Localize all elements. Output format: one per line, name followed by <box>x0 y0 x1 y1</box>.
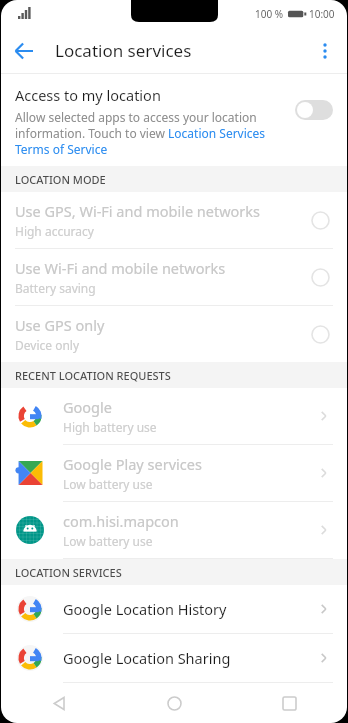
staticText: High battery use <box>63 419 157 435</box>
staticText: Google Location Sharing <box>63 648 315 668</box>
staticText: Device only <box>15 337 80 353</box>
button[interactable]: Back <box>1 684 117 723</box>
staticText: RECENT LOCATION REQUESTS <box>15 368 171 383</box>
staticText: 100 % <box>255 7 284 21</box>
button[interactable]: Home <box>117 684 232 723</box>
button[interactable]: More options <box>302 28 347 73</box>
button[interactable]: Use Wi-Fi and mobile networks <box>1 249 347 306</box>
staticText: Use Wi-Fi and mobile networks <box>15 258 226 278</box>
staticText: Location services <box>55 39 192 62</box>
staticText: Low battery use <box>63 533 153 549</box>
staticText: LOCATION MODE <box>15 172 106 187</box>
staticText: High accuracy <box>15 223 94 239</box>
button[interactable]: Access to my location <box>1 74 347 166</box>
button[interactable]: Recent apps <box>232 684 347 723</box>
button[interactable]: Google Location Sharing <box>1 634 347 683</box>
button[interactable]: Google Play services <box>1 445 347 502</box>
button[interactable]: Google <box>1 388 347 445</box>
staticText: 10:00 <box>309 7 335 21</box>
staticText: Allow selected apps to access your locat… <box>15 109 287 157</box>
button[interactable]: com.hisi.mapcon <box>1 502 347 559</box>
staticText: Google Play services <box>63 454 202 474</box>
staticText: Low battery use <box>63 476 153 492</box>
button[interactable]: Use GPS only <box>1 306 347 362</box>
staticText: Google <box>63 397 112 417</box>
staticText: Use GPS only <box>15 315 105 335</box>
staticText: Battery saving <box>15 280 96 296</box>
staticText: Access to my location <box>15 85 161 105</box>
staticText: LOCATION SERVICES <box>15 565 122 580</box>
button[interactable]: Back <box>1 28 46 73</box>
staticText: Use GPS, Wi-Fi and mobile networks <box>15 201 261 221</box>
button[interactable]: Google Location History <box>1 585 347 634</box>
staticText: com.hisi.mapcon <box>63 511 179 531</box>
staticText: Google Location History <box>63 599 315 619</box>
button[interactable]: Use GPS, Wi-Fi and mobile networks <box>1 192 347 249</box>
